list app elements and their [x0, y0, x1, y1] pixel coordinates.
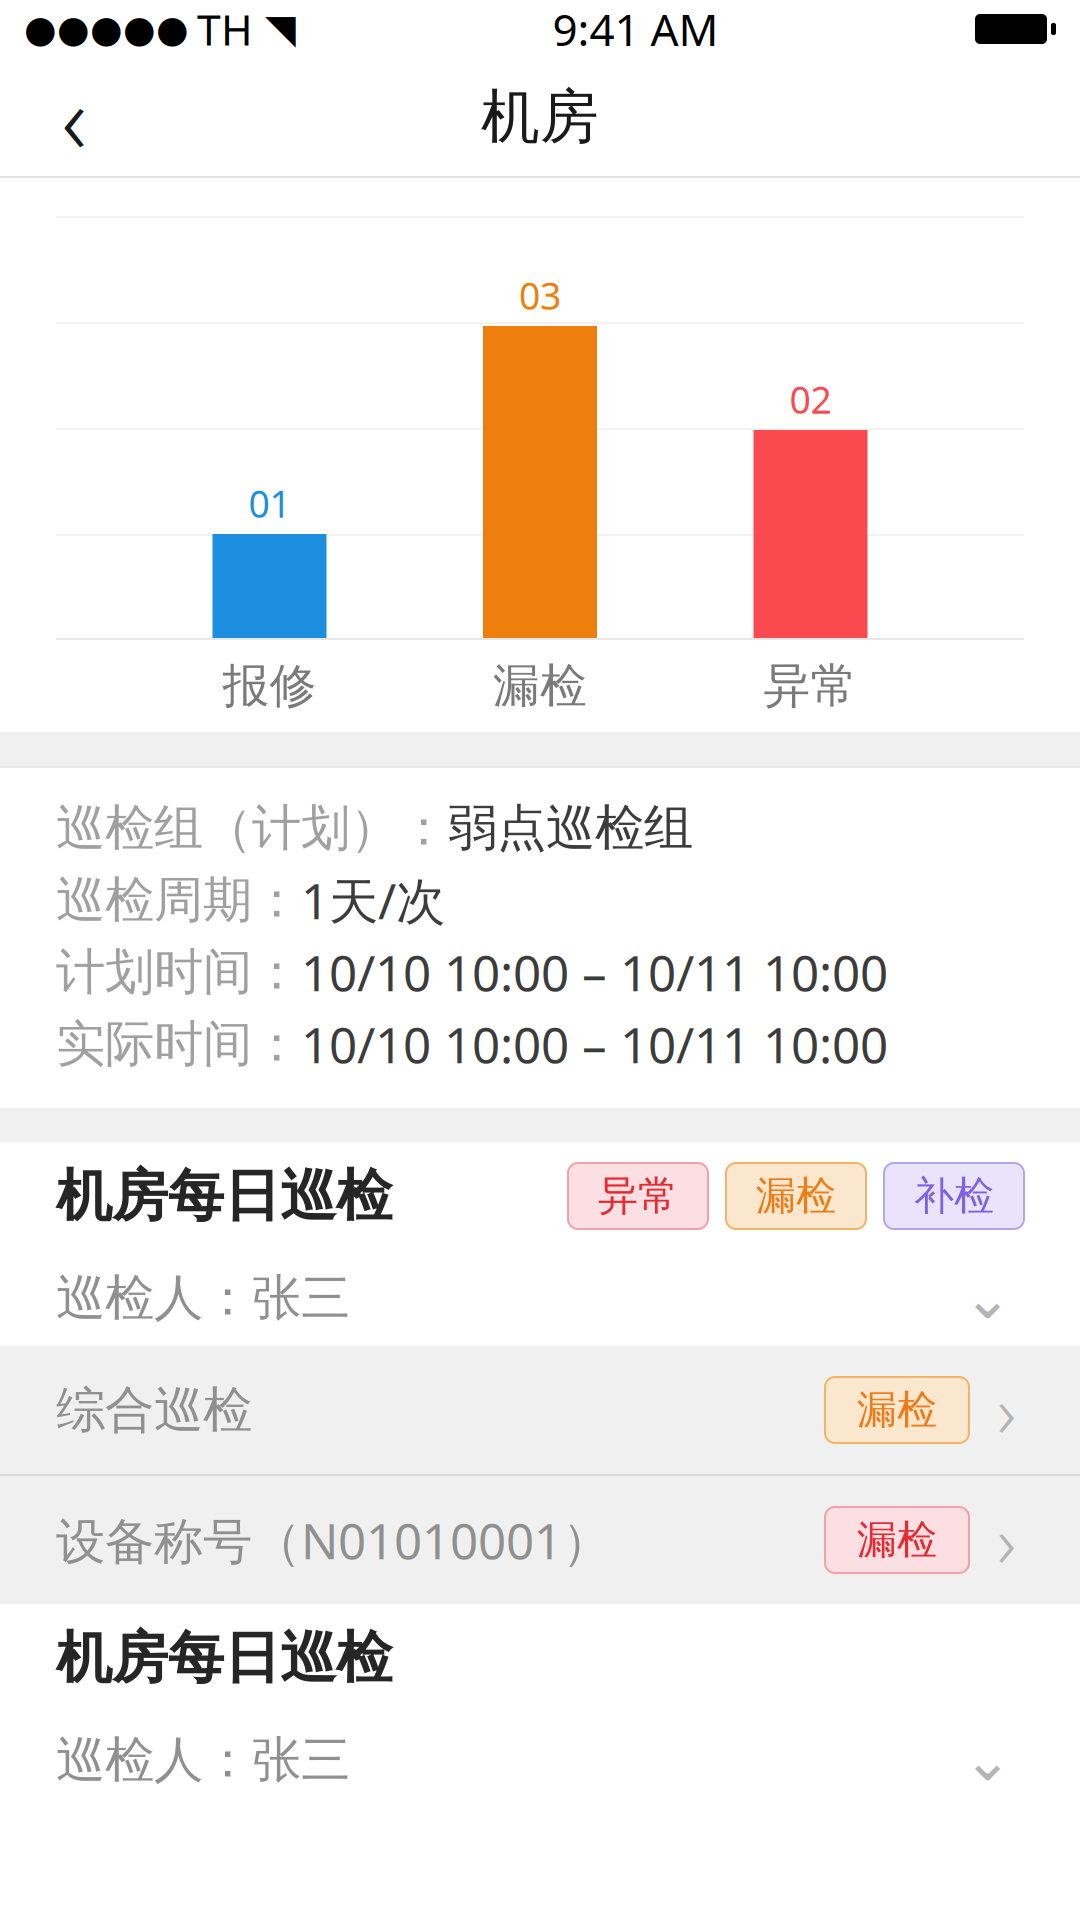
- staticText: 补检: [914, 1171, 994, 1220]
- staticText: 02: [789, 374, 831, 424]
- staticText: 异常: [598, 1171, 678, 1220]
- staticText: 漏检: [493, 657, 587, 715]
- staticText: 计划时间：: [56, 942, 301, 1002]
- staticText: 10/10 10:00 – 10/11 10:00: [301, 1011, 888, 1077]
- button[interactable]: Back: [24, 65, 124, 169]
- button[interactable]: 综合巡检: [0, 1346, 1080, 1474]
- staticText: 01: [248, 478, 290, 528]
- staticText: 漏检: [857, 1515, 937, 1564]
- staticText: 设备称号（N01010001）: [56, 1507, 611, 1573]
- button[interactable]: 漏检: [726, 1163, 866, 1229]
- button[interactable]: 巡检人：张三: [0, 1712, 1080, 1808]
- button[interactable]: 巡检人：张三: [0, 1250, 1080, 1346]
- staticText: ›: [997, 1362, 1016, 1458]
- staticText: ◥: [265, 6, 296, 52]
- button[interactable]: 设备称号（N01010001）: [0, 1474, 1080, 1604]
- staticText: 报修: [222, 657, 316, 715]
- staticText: ›: [997, 1492, 1016, 1588]
- staticText: TH: [197, 1, 253, 57]
- staticText: ‹: [61, 53, 86, 181]
- button[interactable]: 补检: [884, 1163, 1024, 1229]
- button[interactable]: 漏检: [825, 1507, 969, 1573]
- staticText: 机房每日巡检: [56, 1624, 392, 1692]
- staticText: 异常: [763, 657, 857, 715]
- staticText: ⌄: [963, 1265, 1012, 1331]
- staticText: 漏检: [756, 1171, 836, 1220]
- staticText: 巡检周期：: [56, 870, 301, 930]
- staticText: ●●●●●: [24, 8, 189, 50]
- staticText: 1天/次: [301, 867, 445, 933]
- staticText: 巡检人：张三: [56, 1268, 350, 1328]
- staticText: 巡检组（计划）：: [56, 798, 448, 858]
- button[interactable]: 异常: [568, 1163, 708, 1229]
- staticText: 机房: [481, 81, 599, 153]
- staticText: ⌄: [963, 1727, 1012, 1793]
- staticText: 弱点巡检组: [448, 798, 693, 858]
- staticText: 实际时间：: [56, 1014, 301, 1074]
- staticText: 03: [519, 270, 561, 320]
- staticText: 10/10 10:00 – 10/11 10:00: [301, 939, 888, 1005]
- staticText: 9:41 AM: [552, 0, 718, 58]
- staticText: 漏检: [857, 1385, 937, 1434]
- staticText: 巡检人：张三: [56, 1730, 350, 1790]
- button[interactable]: 漏检: [825, 1377, 969, 1443]
- staticText: 综合巡检: [56, 1380, 252, 1440]
- staticText: 机房每日巡检: [56, 1162, 392, 1230]
